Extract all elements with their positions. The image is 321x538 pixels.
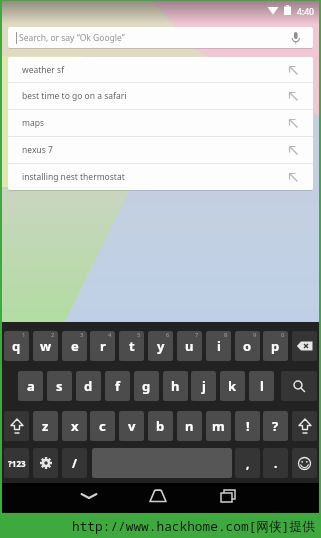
staticText: nexus 7	[22, 144, 287, 156]
button[interactable]: /	[62, 448, 87, 478]
staticText: k	[228, 377, 237, 395]
button[interactable]: d	[76, 371, 101, 401]
button[interactable]: best time to go on a safari	[8, 83, 313, 109]
button[interactable]: installing nest thermostat	[8, 164, 313, 190]
staticText: 8	[224, 331, 228, 339]
staticText: 1	[22, 331, 26, 339]
staticText: a	[27, 377, 35, 395]
button[interactable]	[292, 411, 317, 441]
staticText: ?123	[8, 458, 26, 469]
button[interactable]: Search, or say “Ok Google”	[8, 27, 313, 48]
button[interactable]: u	[177, 331, 202, 361]
button[interactable]: i	[206, 331, 231, 361]
staticText: h	[171, 377, 180, 395]
button[interactable]	[288, 30, 304, 46]
staticText: 0	[281, 331, 285, 339]
staticText: 7	[195, 331, 199, 339]
button[interactable]: g	[134, 371, 159, 401]
staticText: 6	[166, 331, 170, 339]
staticText: m	[212, 417, 225, 435]
button[interactable]: q	[4, 331, 29, 361]
button[interactable]: o	[235, 331, 260, 361]
staticText: 9	[253, 331, 257, 339]
button[interactable]: n	[177, 411, 202, 441]
button[interactable]	[219, 488, 237, 504]
button[interactable]	[149, 488, 167, 504]
staticText: w	[40, 337, 52, 355]
staticText: Search, or say “Ok Google”	[19, 32, 125, 44]
staticText: o	[243, 337, 252, 355]
staticText: d	[84, 377, 93, 395]
staticText: j	[202, 377, 206, 395]
staticText: g	[142, 377, 151, 395]
button[interactable]: v	[119, 411, 144, 441]
button[interactable]: a	[18, 371, 43, 401]
button[interactable]: ,	[235, 448, 260, 478]
button[interactable]	[4, 411, 29, 441]
button[interactable]: x	[62, 411, 87, 441]
staticText: b	[156, 417, 165, 435]
button[interactable]: !	[235, 411, 260, 441]
staticText: y	[157, 337, 165, 355]
staticText: t	[129, 337, 135, 355]
staticText: l	[260, 377, 264, 395]
staticText: u	[185, 337, 194, 355]
staticText: maps	[22, 117, 287, 129]
staticText: x	[71, 417, 79, 435]
button[interactable]: e	[62, 331, 87, 361]
staticText: i	[217, 337, 221, 355]
staticText: 4	[108, 331, 112, 339]
button[interactable]: k	[220, 371, 245, 401]
staticText: 3	[80, 331, 84, 339]
button[interactable]: y	[148, 331, 173, 361]
button[interactable]	[292, 448, 317, 478]
button[interactable]: weather sf	[8, 57, 313, 82]
button[interactable]: c	[90, 411, 115, 441]
button[interactable]: z	[33, 411, 58, 441]
staticText: n	[185, 417, 194, 435]
staticText: installing nest thermostat	[22, 171, 287, 183]
button[interactable]	[292, 331, 317, 361]
button[interactable]: ?	[263, 411, 288, 441]
button[interactable]: h	[163, 371, 188, 401]
button[interactable]	[281, 371, 317, 401]
staticText: c	[99, 417, 106, 435]
staticText: s	[56, 377, 63, 395]
staticText: e	[71, 337, 79, 355]
staticText: 5	[137, 331, 141, 339]
staticText: http://www.hackhome.com[网侠]提供	[72, 517, 316, 534]
button[interactable]: b	[148, 411, 173, 441]
button[interactable]	[80, 489, 98, 503]
staticText: weather sf	[22, 64, 287, 76]
staticText: ?	[272, 417, 279, 435]
staticText: q	[12, 337, 21, 355]
button[interactable]: nexus 7	[8, 137, 313, 163]
button[interactable]: .	[263, 448, 288, 478]
staticText: r	[100, 337, 106, 355]
button[interactable]: p	[263, 331, 288, 361]
staticText: f	[115, 377, 121, 395]
staticText: p	[271, 337, 280, 355]
button[interactable]: l	[249, 371, 274, 401]
button[interactable]: m	[206, 411, 231, 441]
button[interactable]: maps	[8, 110, 313, 136]
button[interactable]: s	[47, 371, 72, 401]
button[interactable]: f	[105, 371, 130, 401]
button[interactable]	[33, 448, 58, 478]
button[interactable]: ?123	[4, 448, 29, 478]
staticText: /	[72, 455, 77, 471]
button[interactable]: t	[119, 331, 144, 361]
button[interactable]: j	[191, 371, 216, 401]
staticText: v	[128, 417, 136, 435]
staticText: 4:40	[297, 6, 314, 18]
button[interactable]: r	[90, 331, 115, 361]
staticText: z	[42, 417, 49, 435]
staticText: best time to go on a safari	[22, 90, 287, 102]
staticText: ,	[246, 455, 250, 471]
button[interactable]: w	[33, 331, 58, 361]
staticText: !	[246, 417, 250, 435]
staticText: .	[274, 455, 278, 471]
staticText: 2	[51, 331, 55, 339]
